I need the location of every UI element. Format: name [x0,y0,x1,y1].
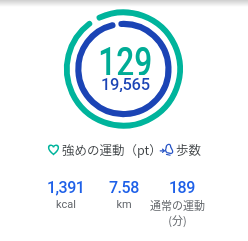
staticText: 129 [98,39,153,75]
staticText: 通常の運動 (分) [150,197,205,228]
staticText: 189 [169,178,195,197]
staticText: 1,391 [47,178,85,197]
staticText: 歩数 [176,140,202,158]
staticText: 7.58 [109,178,139,197]
button[interactable]: 歩数 [160,140,202,158]
button[interactable]: 189 [153,178,211,197]
staticText: km [116,198,132,211]
staticText: kcal [56,198,76,211]
button[interactable]: 強めの運動（pt） [48,140,162,158]
button[interactable]: 1,391 [37,178,95,211]
button[interactable]: 7.58 [95,178,153,211]
staticText: 19,565 [101,75,150,92]
staticText: 強めの運動（pt） [62,140,162,158]
